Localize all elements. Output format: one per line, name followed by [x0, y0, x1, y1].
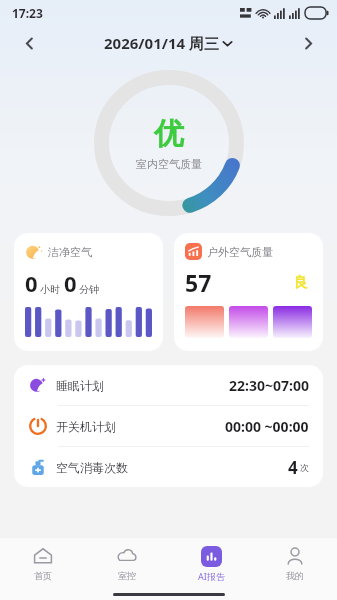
staticText: 洁净空气	[48, 245, 92, 259]
staticText: 小时	[40, 283, 60, 296]
staticText: 00:00 ~00:00	[225, 417, 309, 436]
staticText: 良	[294, 274, 308, 292]
staticText: 首页	[34, 570, 52, 581]
button[interactable]: AI报告	[169, 538, 253, 588]
button[interactable]: Previous day	[14, 28, 44, 58]
staticText: 0	[25, 268, 38, 298]
staticText: 开关机计划	[56, 419, 116, 434]
button[interactable]: 空气消毒次数	[14, 447, 323, 487]
staticText: 室控	[118, 570, 136, 581]
staticText: AI报告	[198, 570, 225, 582]
button[interactable]: 我的	[253, 538, 337, 588]
staticText: 睡眠计划	[56, 378, 104, 393]
button[interactable]: 睡眠计划	[14, 365, 323, 405]
staticText: 次	[300, 462, 309, 473]
staticText: 我的	[286, 570, 304, 581]
button[interactable]: 首页	[0, 538, 85, 588]
button[interactable]: Next day	[293, 28, 323, 58]
staticText: 分钟	[79, 283, 99, 296]
staticText: 空气消毒次数	[56, 460, 128, 475]
staticText: 2026/01/14 周三	[104, 33, 219, 53]
staticText: 0	[64, 268, 77, 298]
button[interactable]: 洁净空气	[14, 233, 163, 351]
button[interactable]: 室控	[85, 538, 169, 588]
staticText: 57	[185, 267, 212, 298]
staticText: 22:30~07:00	[229, 376, 309, 395]
staticText: 室内空气质量	[136, 157, 202, 171]
staticText: 4	[288, 456, 298, 479]
staticText: 17:23	[12, 5, 43, 21]
staticText: 户外空气质量	[207, 245, 273, 259]
button[interactable]: 户外空气质量	[174, 233, 323, 351]
staticText: 优	[154, 115, 184, 153]
button[interactable]: 开关机计划	[14, 406, 323, 446]
button[interactable]: 2026/01/14 周三	[104, 33, 233, 53]
